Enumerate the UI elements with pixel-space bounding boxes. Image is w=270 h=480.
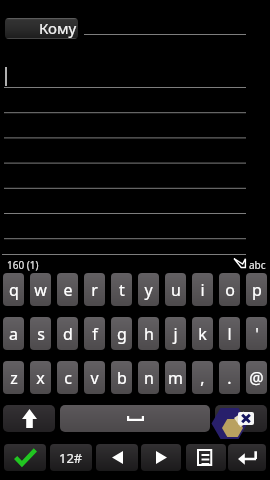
button[interactable]: t bbox=[111, 273, 132, 306]
button[interactable]: l bbox=[219, 317, 240, 350]
staticText: ' bbox=[255, 323, 259, 345]
button[interactable]: n bbox=[138, 361, 159, 394]
button[interactable]: Move right bbox=[141, 444, 181, 471]
button[interactable]: v bbox=[84, 361, 105, 394]
button[interactable]: c bbox=[57, 361, 78, 394]
button[interactable]: Accept bbox=[4, 444, 46, 471]
staticText: t bbox=[119, 279, 125, 301]
button[interactable]: s bbox=[30, 317, 51, 350]
button[interactable]: a bbox=[3, 317, 24, 350]
staticText: f bbox=[92, 323, 98, 345]
button[interactable]: q bbox=[3, 273, 24, 306]
button[interactable]: Кому bbox=[5, 18, 78, 39]
staticText: d bbox=[63, 323, 73, 345]
staticText: 160 (1) bbox=[7, 258, 39, 272]
staticText: b bbox=[117, 367, 127, 389]
staticText: n bbox=[144, 367, 154, 389]
button[interactable]: y bbox=[138, 273, 159, 306]
button[interactable]: o bbox=[219, 273, 240, 306]
button[interactable]: k bbox=[192, 317, 213, 350]
button[interactable]: x bbox=[30, 361, 51, 394]
button[interactable]: d bbox=[57, 317, 78, 350]
staticText: y bbox=[144, 279, 153, 301]
staticText: x bbox=[36, 367, 45, 389]
button[interactable]: r bbox=[84, 273, 105, 306]
staticText: j bbox=[173, 323, 178, 345]
staticText: o bbox=[225, 279, 235, 301]
staticText: . bbox=[227, 367, 232, 389]
button[interactable]: . bbox=[219, 361, 240, 394]
button[interactable]: u bbox=[165, 273, 186, 306]
button[interactable]: f bbox=[84, 317, 105, 350]
button[interactable]: ' bbox=[246, 317, 267, 350]
staticText: u bbox=[171, 279, 181, 301]
button[interactable]: p bbox=[246, 273, 267, 306]
button[interactable]: , bbox=[192, 361, 213, 394]
button[interactable]: Move left bbox=[96, 444, 138, 471]
staticText: @ bbox=[249, 367, 264, 389]
button[interactable]: h bbox=[138, 317, 159, 350]
button[interactable]: Backspace bbox=[215, 405, 267, 432]
staticText: e bbox=[63, 279, 73, 301]
staticText: l bbox=[227, 323, 232, 345]
staticText: Кому bbox=[39, 18, 77, 38]
staticText: p bbox=[252, 279, 262, 301]
button[interactable]: b bbox=[111, 361, 132, 394]
staticText: h bbox=[144, 323, 154, 345]
button[interactable]: Space bbox=[60, 405, 210, 432]
staticText: r bbox=[91, 279, 98, 301]
staticText: k bbox=[198, 323, 207, 345]
button[interactable]: w bbox=[30, 273, 51, 306]
staticText: v bbox=[90, 367, 99, 389]
staticText: , bbox=[200, 367, 205, 389]
staticText: abc bbox=[249, 258, 266, 272]
button[interactable]: Shift bbox=[3, 405, 55, 432]
button[interactable]: i bbox=[192, 273, 213, 306]
button[interactable]: j bbox=[165, 317, 186, 350]
staticText: g bbox=[117, 323, 127, 345]
button[interactable]: @ bbox=[246, 361, 267, 394]
button[interactable]: Numbers and symbols bbox=[50, 444, 92, 471]
staticText: z bbox=[10, 367, 18, 389]
button[interactable]: z bbox=[3, 361, 24, 394]
button[interactable]: Input mode bbox=[234, 258, 246, 268]
button[interactable]: e bbox=[57, 273, 78, 306]
staticText: a bbox=[9, 323, 18, 345]
staticText: i bbox=[200, 279, 205, 301]
staticText: m bbox=[168, 367, 183, 389]
button[interactable]: Options bbox=[186, 444, 226, 471]
staticText: q bbox=[9, 279, 19, 301]
button[interactable]: g bbox=[111, 317, 132, 350]
staticText: s bbox=[37, 323, 45, 345]
button[interactable]: Enter bbox=[228, 444, 266, 471]
button[interactable]: m bbox=[165, 361, 186, 394]
staticText: c bbox=[64, 367, 72, 389]
staticText: 12# bbox=[59, 449, 83, 467]
staticText: w bbox=[34, 279, 47, 301]
